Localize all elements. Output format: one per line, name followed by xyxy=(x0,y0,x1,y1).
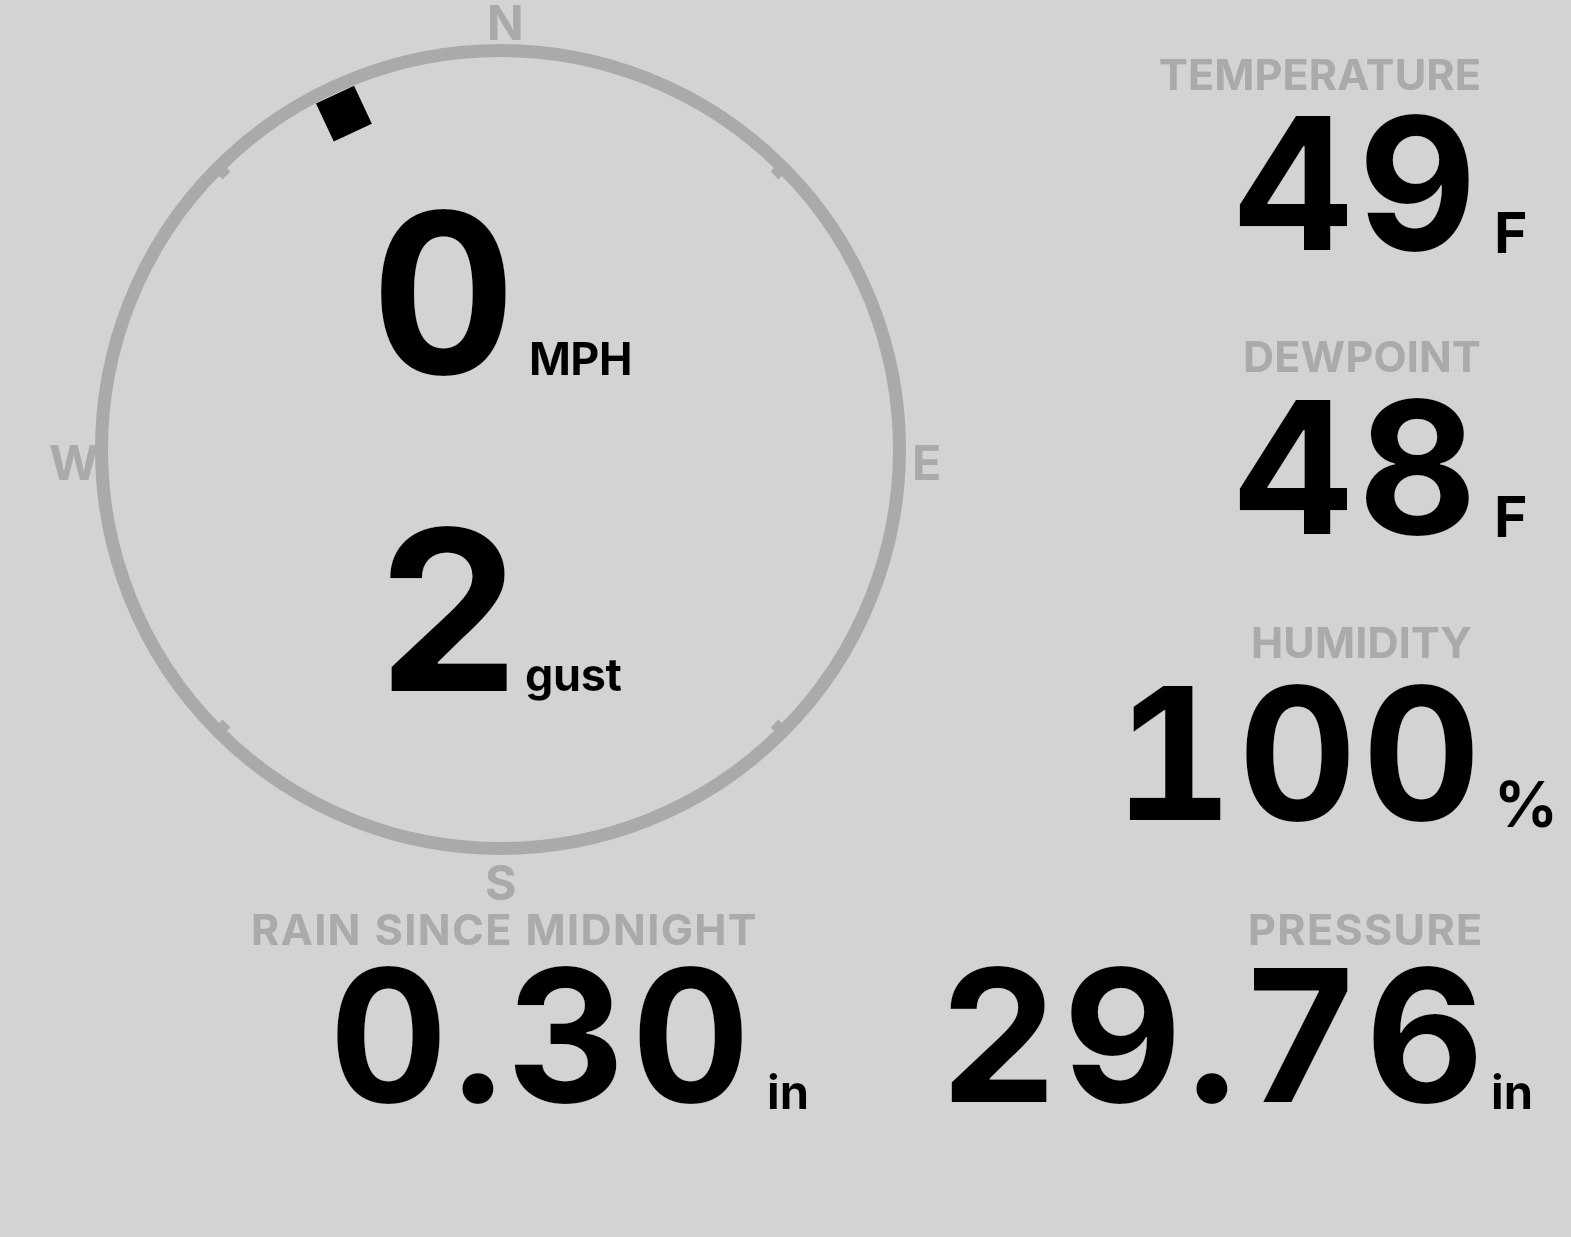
staticText: HUMIDITY xyxy=(1251,616,1472,668)
staticText: E xyxy=(912,433,942,491)
button[interactable]: DEWPOINT 48 F xyxy=(1225,328,1571,550)
staticText: RAIN SINCE MIDNIGHT xyxy=(251,903,758,955)
button[interactable]: Wind speed 0 MPH xyxy=(372,198,634,384)
staticText: gust xyxy=(525,647,622,701)
button[interactable]: PRESSURE 29.76 in xyxy=(1230,901,1553,1118)
staticText: 100 xyxy=(1114,642,1486,865)
staticText: 0 xyxy=(371,157,521,428)
staticText: DEWPOINT xyxy=(1243,330,1481,382)
button[interactable]: HUMIDITY 100 % xyxy=(1233,614,1571,836)
staticText: % xyxy=(1494,766,1558,842)
button[interactable]: RAIN SINCE MIDNIGHT 0.30 in xyxy=(233,901,829,1118)
staticText: F xyxy=(1494,198,1528,267)
staticText: MPH xyxy=(529,331,632,385)
button[interactable]: Wind direction dial, wind from the north… xyxy=(95,44,906,855)
staticText: 49 xyxy=(1234,72,1482,295)
staticText: 48 xyxy=(1234,356,1482,579)
staticText: in xyxy=(1491,1063,1533,1120)
button[interactable]: TEMPERATURE 49 F xyxy=(1141,46,1571,266)
staticText: TEMPERATURE xyxy=(1159,48,1482,100)
staticText: N xyxy=(487,0,524,51)
staticText: PRESSURE xyxy=(1248,903,1484,955)
staticText: W xyxy=(49,433,99,491)
staticText: F xyxy=(1494,482,1528,551)
staticText: 2 xyxy=(376,474,526,745)
staticText: in xyxy=(767,1063,809,1120)
staticText: S xyxy=(485,853,517,911)
staticText: 29.76 xyxy=(939,924,1490,1147)
button[interactable]: Wind gust 2 MPH xyxy=(378,518,634,704)
staticText: 0.30 xyxy=(329,924,756,1147)
